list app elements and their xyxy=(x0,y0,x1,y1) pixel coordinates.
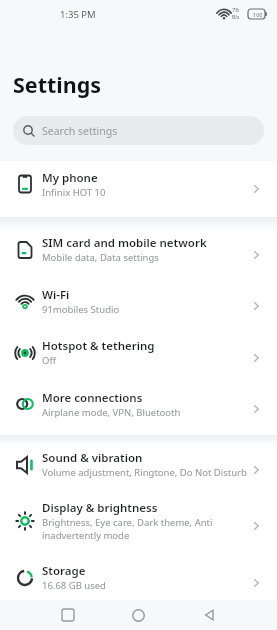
staticText: My phone xyxy=(42,170,98,186)
button[interactable] xyxy=(103,600,174,630)
staticText: More connections xyxy=(42,390,143,406)
button[interactable] xyxy=(32,600,103,630)
button[interactable]: More connections xyxy=(0,383,277,435)
staticText: inadvertently mode xyxy=(42,529,130,542)
button[interactable]: Storage xyxy=(0,557,277,608)
button[interactable]: Sound & vibration xyxy=(0,444,277,495)
button[interactable]: Search settings xyxy=(13,116,264,145)
staticText: Infinix HOT 10 xyxy=(42,186,106,199)
staticText: 91mobiles Studio xyxy=(42,303,120,316)
staticText: Search settings xyxy=(42,124,118,138)
staticText: Airplane mode, VPN, Bluetooth xyxy=(42,406,181,419)
staticText: Brightness, Eye care, Dark theme, Anti xyxy=(42,516,213,529)
staticText: Volume adjustment, Ringtone, Do Not Dist… xyxy=(42,466,247,479)
staticText: Storage xyxy=(42,563,86,579)
staticText: SIM card and mobile network xyxy=(42,235,207,251)
staticText: 1:35 PM xyxy=(60,8,96,21)
staticText: 76 xyxy=(232,6,239,14)
staticText: Hotspot & tethering xyxy=(42,338,155,354)
button[interactable]: Wi-Fi xyxy=(0,280,277,332)
staticText: Mobile data, Data settings xyxy=(42,251,159,264)
staticText: Settings xyxy=(13,70,102,99)
staticText: B/s xyxy=(232,14,240,21)
staticText: Off xyxy=(42,354,56,367)
staticText: Display & brightness xyxy=(42,500,158,516)
button[interactable]: Display & brightness xyxy=(0,495,277,557)
button[interactable]: Hotspot & tethering xyxy=(0,332,277,383)
staticText: Wi-Fi xyxy=(42,287,70,303)
staticText: 100 xyxy=(253,11,263,18)
button[interactable]: My phone xyxy=(0,161,277,217)
button[interactable]: SIM card and mobile network xyxy=(0,229,277,280)
button[interactable] xyxy=(174,600,245,630)
staticText: 16.68 GB used xyxy=(42,579,106,592)
staticText: Sound & vibration xyxy=(42,450,143,466)
